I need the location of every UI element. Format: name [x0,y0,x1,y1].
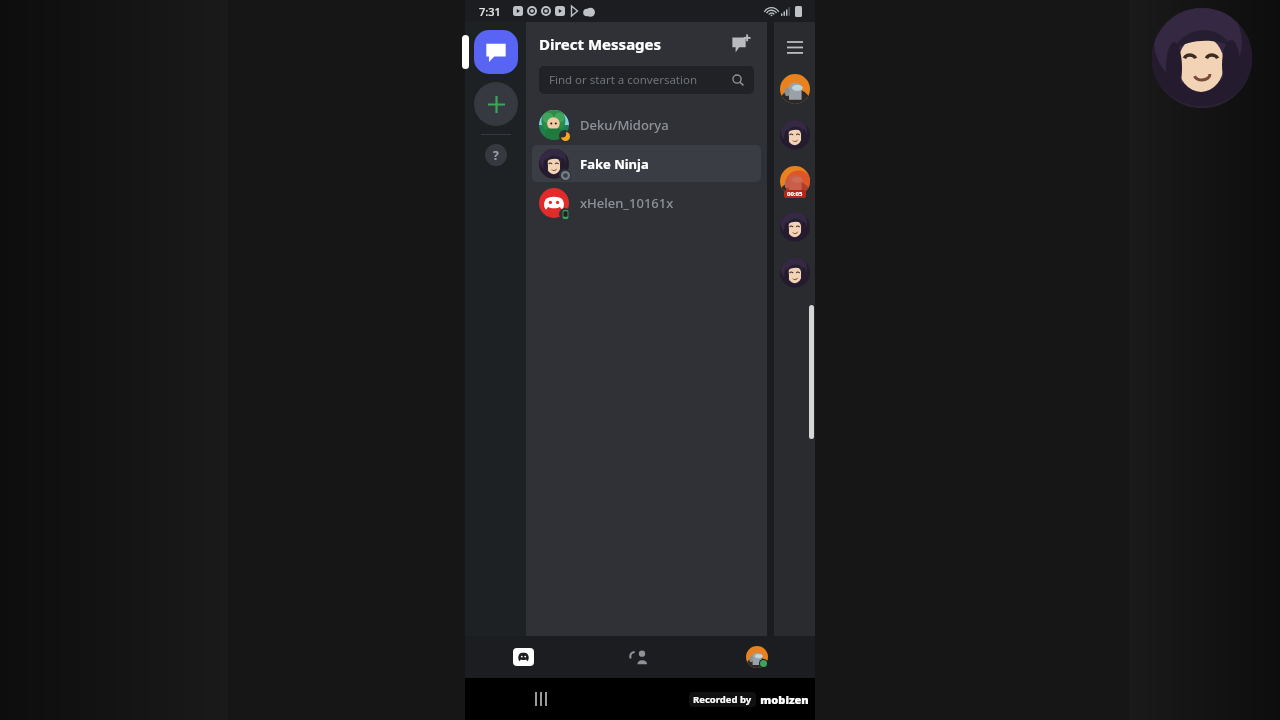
button[interactable]: Open conversation [780,74,810,104]
staticText: Find or start a conversation [549,72,698,88]
staticText: 00:05 [787,190,803,198]
button[interactable]: Help [485,144,507,166]
button[interactable]: Home [465,636,581,678]
staticText: Deku/Midorya [580,116,669,134]
staticText: Recorded by [693,693,752,706]
button[interactable]: Deku/Midorya [532,106,761,143]
button[interactable]: New Direct Message [727,30,755,58]
button[interactable]: Add a Server [474,82,518,126]
staticText: Direct Messages [539,34,662,54]
button[interactable]: You [698,636,815,678]
button[interactable]: xHelen_10161x [532,184,761,221]
button[interactable]: Friends [581,636,698,678]
button[interactable]: Find or start a conversation [539,66,754,94]
button[interactable]: Direct Messages [474,30,518,74]
button[interactable]: Open conversation [780,120,810,150]
button[interactable]: Fake Ninja [532,145,761,182]
button[interactable]: Open conversation [780,166,810,196]
staticText: mobizen [760,692,809,707]
staticText: 7:31 [479,4,501,19]
button[interactable]: Open conversation [780,212,810,242]
staticText: xHelen_10161x [580,194,674,212]
staticText: ? [493,147,499,163]
button[interactable]: Menu [782,34,808,60]
staticText: Fake Ninja [580,155,649,173]
button[interactable]: Open conversation [780,258,810,288]
